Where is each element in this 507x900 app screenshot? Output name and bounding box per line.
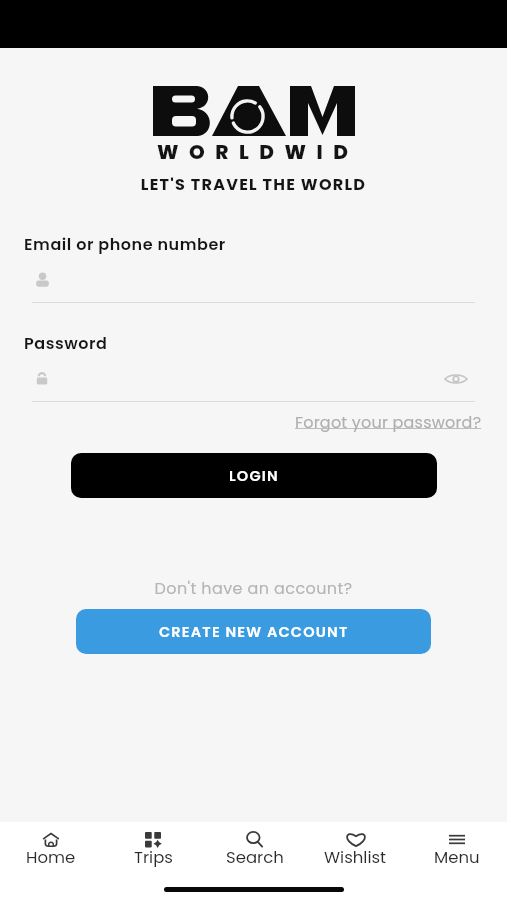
staticText: Password — [24, 332, 108, 354]
staticText: Wishlist — [324, 846, 387, 869]
staticText: Trips — [134, 846, 173, 869]
button[interactable]: CREATE NEW ACCOUNT — [76, 609, 431, 654]
button[interactable]: Search — [204, 822, 305, 871]
staticText: LOGIN — [229, 466, 279, 486]
staticText: Menu — [434, 846, 480, 869]
button[interactable]: Menu — [406, 822, 507, 871]
staticText: WORLDWID — [157, 138, 359, 166]
button[interactable]: Home — [0, 822, 102, 871]
button[interactable]: Wishlist — [305, 822, 406, 871]
staticText: Don't have an account? — [0, 577, 507, 599]
button[interactable]: Show password — [443, 369, 469, 388]
button[interactable]: Trips — [102, 822, 204, 871]
staticText: Home — [26, 846, 76, 869]
button[interactable]: Forgot your password? — [295, 411, 482, 433]
button[interactable]: LOGIN — [71, 453, 437, 498]
staticText: CREATE NEW ACCOUNT — [159, 622, 349, 642]
staticText: LET'S TRAVEL THE WORLD — [0, 173, 507, 195]
staticText: Search — [226, 846, 284, 869]
staticText: Email or phone number — [24, 233, 226, 255]
